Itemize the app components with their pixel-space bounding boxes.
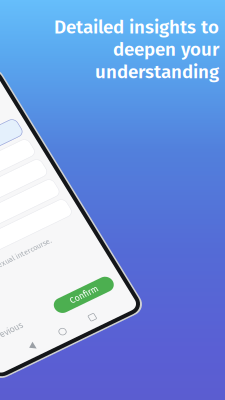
button[interactable]: Previous (12, 239, 61, 255)
button[interactable]: Rarely (5, 80, 155, 104)
button[interactable]: Recents (111, 266, 122, 277)
button[interactable]: Often (5, 127, 155, 151)
staticText: understanding (95, 61, 219, 83)
staticText: How often do you engage in (12, 35, 125, 47)
button[interactable]: Confirm (89, 239, 153, 255)
staticText: Sometimes (20, 108, 63, 118)
staticText: Tracking your sexual intercourse. (12, 179, 122, 188)
staticText: Detailed insights to (54, 16, 219, 38)
staticText: Confirm (106, 242, 136, 253)
staticText: deepen your (113, 38, 219, 61)
button[interactable]: Sometimes (5, 104, 155, 127)
staticText: Previous (20, 242, 53, 253)
button[interactable]: Never (5, 57, 155, 80)
button[interactable]: Frequently (5, 151, 155, 174)
staticText: Often (20, 131, 42, 142)
staticText: Frequently (20, 155, 61, 165)
